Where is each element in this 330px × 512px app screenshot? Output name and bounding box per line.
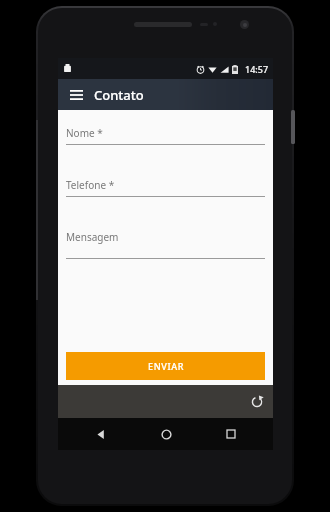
button[interactable]: ENVIAR <box>66 352 265 380</box>
button[interactable]: Telefone * <box>66 178 265 197</box>
button[interactable]: Refresh <box>247 392 267 412</box>
staticText: Contato <box>94 86 144 104</box>
staticText: Mensagem <box>66 230 119 244</box>
button[interactable]: Mensagem <box>66 230 265 259</box>
button[interactable]: Home <box>143 418 189 450</box>
button[interactable]: Nome * <box>66 126 265 145</box>
staticText: 14:57 <box>245 63 269 75</box>
staticText: Telefone * <box>66 178 115 192</box>
staticText: Nome * <box>66 126 103 140</box>
staticText: ENVIAR <box>148 360 184 372</box>
button[interactable]: Back <box>77 418 123 450</box>
button[interactable]: Recent apps <box>208 418 254 450</box>
button[interactable]: Open navigation menu <box>65 84 87 106</box>
